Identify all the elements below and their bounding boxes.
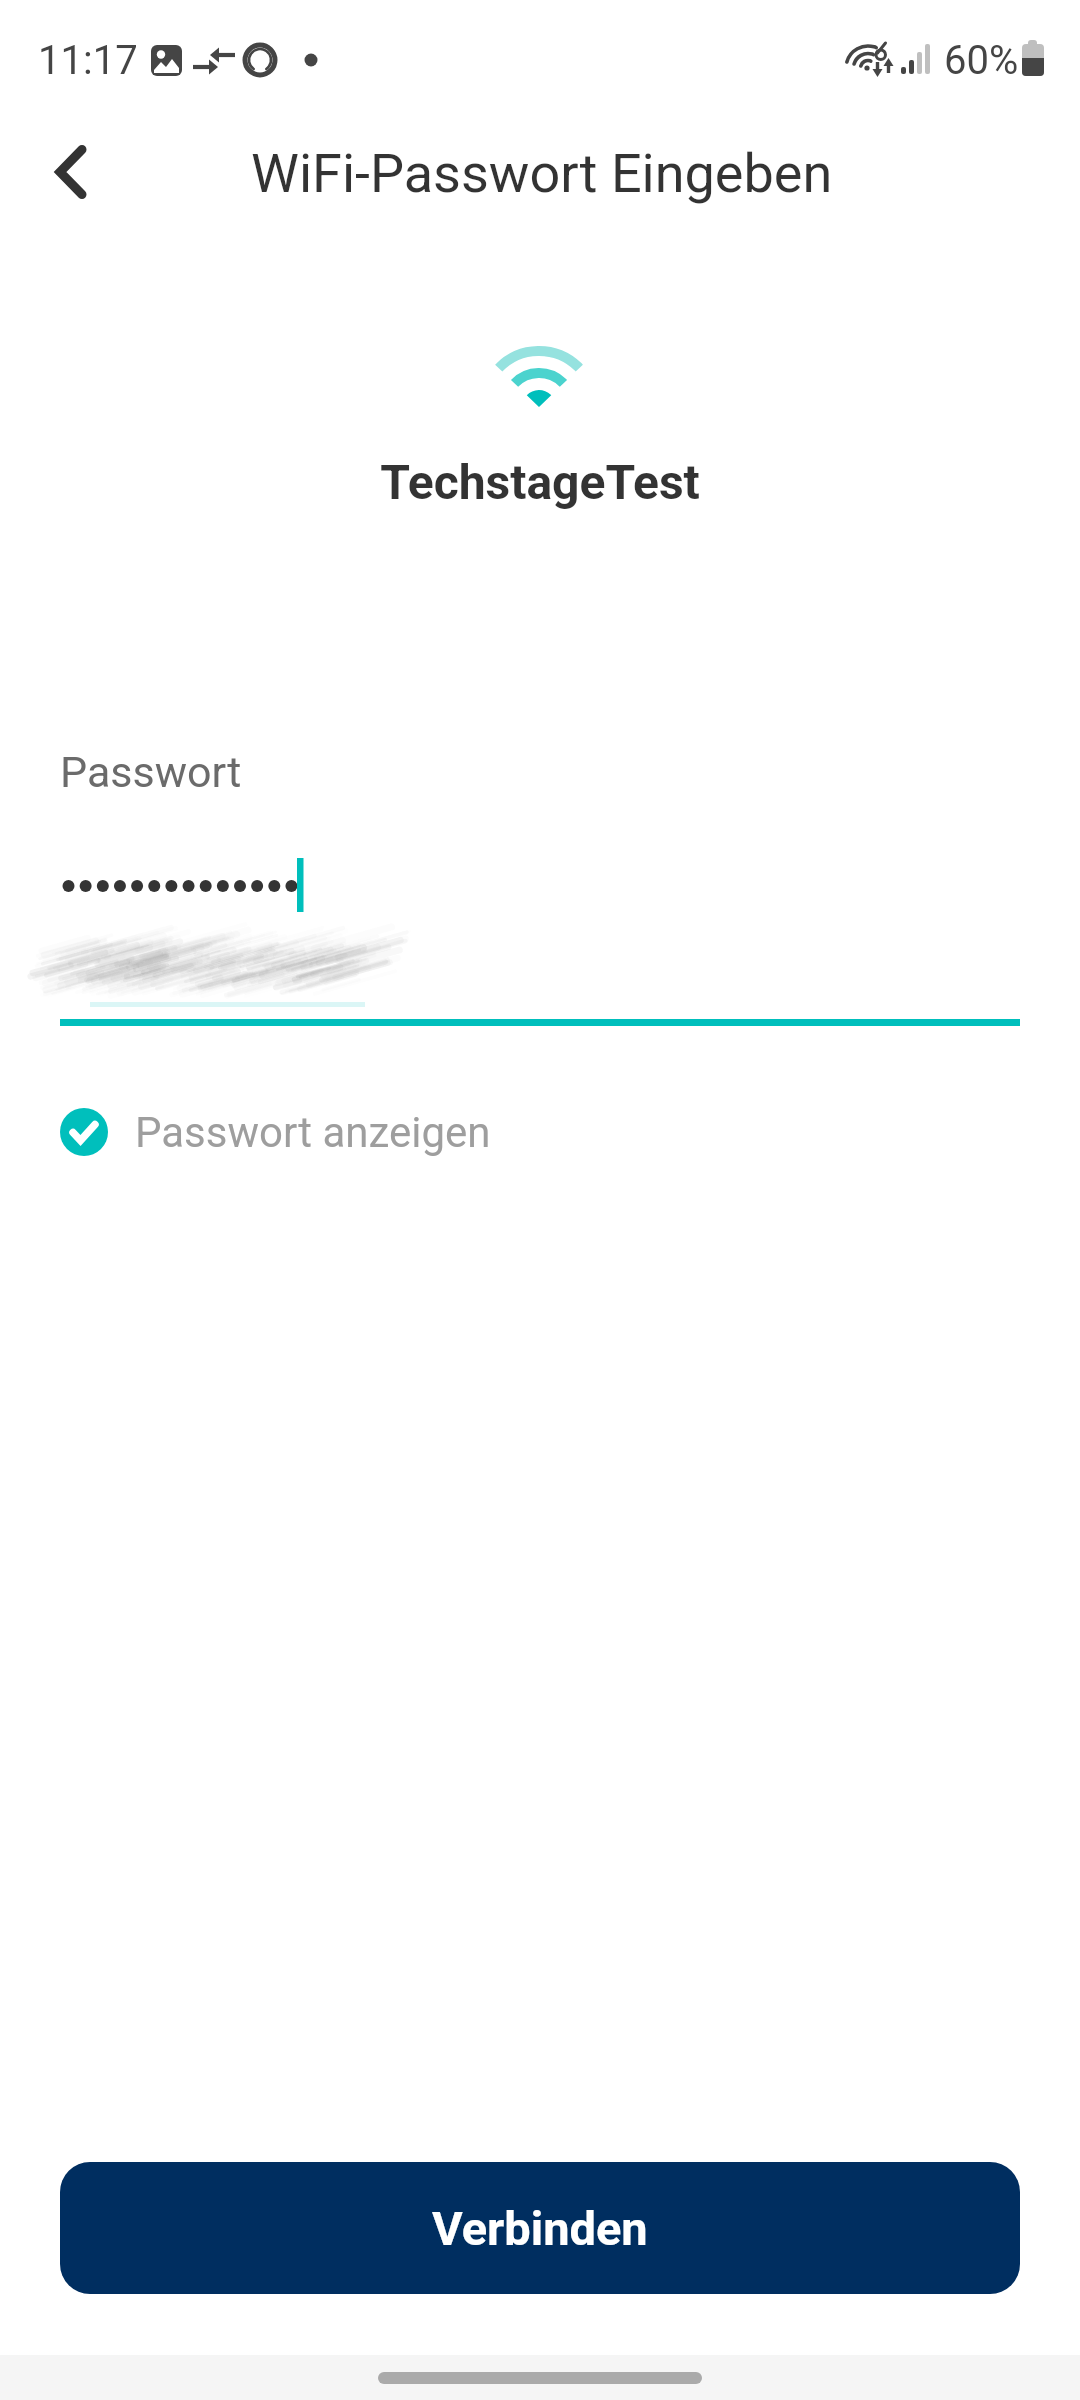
staticText: TechstageTest [0, 454, 1080, 510]
button[interactable]: Passwort anzeigen [60, 1101, 491, 1163]
button[interactable]: Passwort eingeben [60, 820, 1020, 1026]
staticText: 60% [944, 37, 1019, 84]
staticText: 11:17 [38, 37, 138, 84]
button[interactable]: Verbinden [60, 2162, 1020, 2294]
staticText: Passwort anzeigen [135, 1108, 491, 1157]
staticText: Verbinden [432, 2201, 648, 2256]
button[interactable]: Back [20, 126, 116, 218]
staticText: WiFi-Passwort Eingeben [251, 142, 833, 205]
staticText: Passwort [60, 747, 242, 797]
